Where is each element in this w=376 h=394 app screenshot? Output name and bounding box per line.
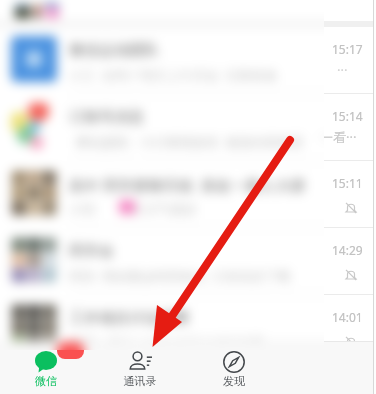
staticText: 阿强 周末聚会时间地点 已经定好了哦 [69,267,291,285]
staticText: ··· [66,342,75,350]
staticText: 小明 今天天气真好 [69,200,197,218]
staticText: 15:14 [332,108,363,124]
staticText: 小王 在吗？明天上午开会 记得准备 [69,66,278,84]
staticText: 发现 [194,374,274,388]
button[interactable]: Contacts [100,341,180,350]
button[interactable]: 同学会 [0,228,376,295]
staticText: 经理：明天上午九点开会讨论方案 [69,334,264,350]
other: Discover [223,351,245,373]
button[interactable]: Discover [194,341,274,394]
staticText: 小明 今天天气真好 [69,200,197,218]
staticText: 小王 在吗？明天上午开会 记得准备 [69,66,278,84]
button[interactable]: Chats [6,341,86,394]
staticText: 14:29 [332,242,363,258]
button[interactable]: 高中 同学群聊天组 亲友一家人大群 [0,161,324,228]
staticText: 经理：明天上午九点开会讨论方案 [69,334,264,350]
staticText: 高中 同学群聊天组 亲友一家人大群 [69,175,306,195]
staticText: 工作项目讨论组啊 [69,309,189,328]
button[interactable]: 订阅号消息 [0,94,376,161]
staticText: ··· [337,61,348,79]
staticText: 订阅号消息 [69,108,144,127]
staticText: 腾讯新闻：今日要闻速览 精选内容推荐 [69,133,304,151]
staticText: 同学会 [69,242,114,261]
button[interactable]: Chats [6,341,86,350]
button[interactable]: 工作项目讨论组啊 [0,295,324,350]
other: Chats [35,351,57,373]
staticText: 同学会 [69,242,114,261]
staticText: 14:01 [332,309,363,325]
staticText: 15:17 [332,41,363,57]
staticText: 微信 [6,374,86,388]
staticText: 15:11 [332,175,363,191]
staticText: 阿强 周末聚会时间地点 已经定好了哦 [69,267,291,285]
button[interactable]: 工作项目讨论组啊 [0,295,376,362]
button[interactable]: 高中 同学群聊天组 亲友一家人大群 [0,161,376,228]
staticText: 通讯录 [100,374,180,388]
button[interactable]: 同学会 [0,228,324,295]
staticText: ··· [66,342,75,354]
staticText: 高中 同学群聊天组 亲友一家人大群 [69,175,306,195]
button[interactable]: Contacts [100,341,180,394]
staticText: 腾讯新闻：今日要闻速览 精选内容推荐 [69,133,304,151]
button[interactable]: 微信运动团队 [0,27,376,94]
button[interactable]: 订阅号消息 [0,94,324,161]
staticText: 工作项目讨论组啊 [69,309,189,328]
other: Contacts [129,351,152,370]
button[interactable]: 微信运动团队 [0,27,324,94]
staticText: 微信运动团队 [69,41,159,60]
staticText: 订阅号消息 [69,108,144,127]
staticText: 微信运动团队 [69,41,159,60]
staticText: 一看··· [320,128,357,146]
